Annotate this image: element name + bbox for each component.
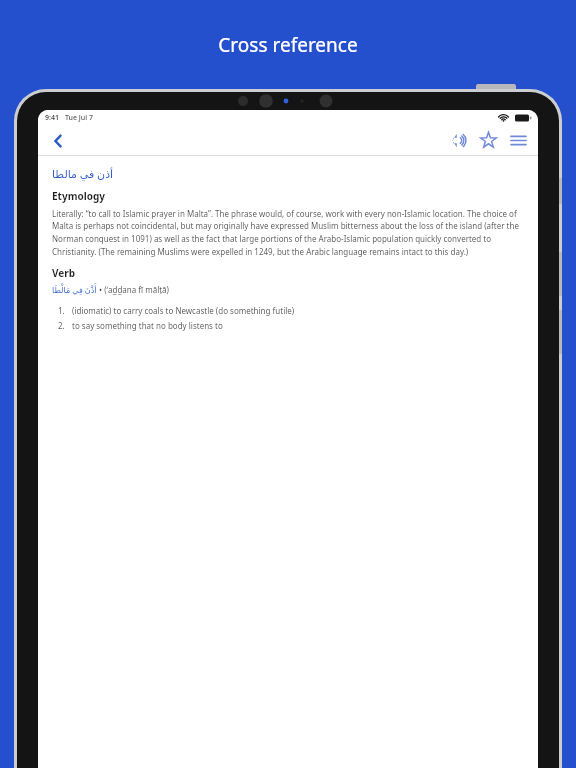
button[interactable]: 2. [58,320,524,331]
staticText: Tue Jul 7 [65,113,93,123]
button[interactable]: 1. [58,305,524,316]
staticText: Etymology [52,189,105,203]
staticText: • (ʻad̲d̲ana fī mālṭā) [97,284,169,295]
button[interactable]: Bookmark [473,126,503,155]
staticText: 2. [58,320,65,331]
staticText: to say something that no body listens to [72,320,524,331]
staticText: Cross reference [0,32,576,58]
button[interactable]: Back [43,126,73,155]
staticText: Verb [52,266,76,280]
staticText: أَذَّنَ فِي مَالْطَا [52,284,97,295]
button[interactable]: Pronounce [443,126,473,155]
staticText: أذن في مالطا [52,166,114,181]
staticText: 9:41 [45,113,59,123]
button[interactable]: Menu [503,126,533,155]
staticText: 1. [58,305,65,316]
staticText: (idiomatic) to carry coals to Newcastle … [72,305,524,316]
staticText: Literally: “to call to Islamic prayer in… [52,208,524,258]
